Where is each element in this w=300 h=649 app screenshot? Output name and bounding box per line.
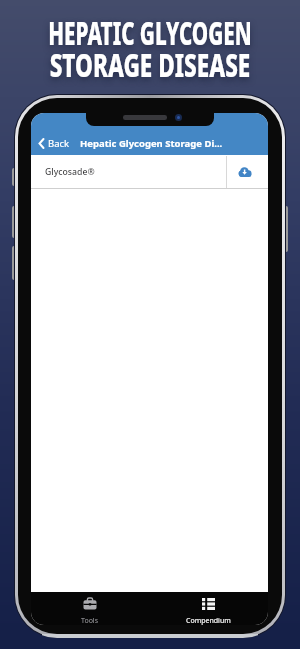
staticText: Back bbox=[48, 137, 70, 150]
button[interactable] bbox=[236, 165, 253, 179]
staticText: Hepatic Glycogen Storage Di... bbox=[80, 137, 223, 150]
button[interactable]: Compendium bbox=[149, 592, 268, 625]
button[interactable]: Glycosade® bbox=[31, 155, 268, 189]
staticText: Tools bbox=[81, 616, 99, 625]
button[interactable]: Back bbox=[38, 137, 70, 150]
button[interactable]: Tools bbox=[31, 592, 149, 625]
staticText: HEPATIC GLYCOGEN bbox=[0, 11, 300, 54]
staticText: STORAGE DISEASE bbox=[0, 43, 300, 86]
staticText: Compendium bbox=[186, 616, 231, 625]
staticText: Glycosade® bbox=[45, 166, 95, 178]
